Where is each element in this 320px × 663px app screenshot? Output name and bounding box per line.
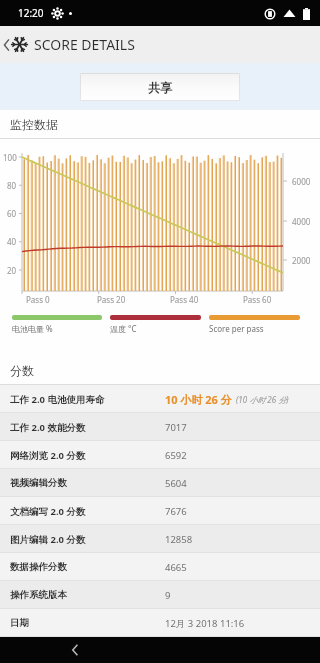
staticText: 工作 2.0 电池使用寿命: [10, 393, 105, 406]
staticText: 7017: [165, 421, 187, 434]
staticText: 日期: [10, 617, 29, 629]
staticText: Pass 0: [26, 294, 50, 305]
staticText: 100: [3, 152, 17, 163]
staticText: (10 小时 26 分): [236, 394, 289, 405]
staticText: 5604: [165, 477, 187, 490]
staticText: 6000: [292, 176, 311, 187]
staticText: 图片编辑 2.0 分数: [10, 533, 86, 546]
button[interactable]: Back to score details: [0, 30, 141, 59]
staticText: 视频编辑分数: [10, 477, 67, 489]
staticText: 60: [7, 208, 17, 219]
staticText: 12858: [165, 533, 193, 546]
button[interactable]: 日期: [0, 609, 320, 637]
button[interactable]: 数据操作分数: [0, 553, 320, 581]
staticText: Pass 60: [243, 294, 272, 305]
staticText: 12:20: [18, 6, 44, 20]
staticText: 分数: [10, 363, 34, 378]
staticText: 电池电量 %: [12, 323, 53, 334]
button[interactable]: 工作 2.0 电池使用寿命: [0, 385, 320, 413]
staticText: Pass 40: [170, 294, 199, 305]
staticText: 网络浏览 2.0 分数: [10, 449, 86, 462]
button[interactable]: Back: [60, 637, 90, 663]
staticText: Pass 20: [97, 294, 126, 305]
staticText: 4665: [165, 561, 187, 574]
staticText: 4000: [292, 216, 311, 227]
staticText: 12月 3 2018 11:16: [165, 617, 245, 630]
staticText: 10 小时 26 分: [165, 392, 232, 407]
staticText: 80: [7, 180, 17, 191]
staticText: 数据操作分数: [10, 561, 67, 573]
button[interactable]: 视频编辑分数: [0, 469, 320, 497]
button[interactable]: 工作 2.0 效能分数: [0, 413, 320, 441]
staticText: 共享: [148, 80, 172, 95]
staticText: 操作系统版本: [10, 589, 67, 601]
button[interactable]: 操作系统版本: [0, 581, 320, 609]
staticText: 20: [7, 265, 17, 276]
staticText: 文档编写 2.0 分数: [10, 505, 86, 518]
staticText: 9: [165, 589, 171, 602]
staticText: 7676: [165, 505, 187, 518]
staticText: 监控数据: [10, 117, 58, 132]
staticText: 2000: [292, 255, 311, 266]
button[interactable]: 图片编辑 2.0 分数: [0, 525, 320, 553]
staticText: 工作 2.0 效能分数: [10, 421, 86, 434]
button[interactable]: 共享: [80, 73, 240, 101]
staticText: SCORE DETAILS: [34, 35, 135, 54]
staticText: Score per pass: [209, 323, 264, 334]
button[interactable]: 文档编写 2.0 分数: [0, 497, 320, 525]
button[interactable]: 网络浏览 2.0 分数: [0, 441, 320, 469]
staticText: 6592: [165, 449, 187, 462]
staticText: 40: [7, 236, 17, 247]
staticText: 温度 °C: [110, 323, 137, 334]
